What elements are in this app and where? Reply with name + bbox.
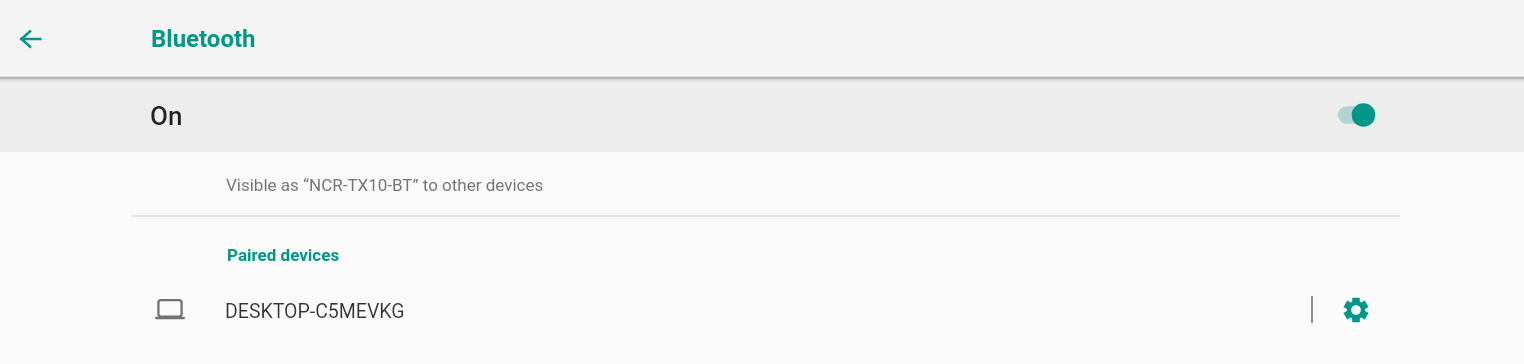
staticText: Bluetooth (151, 25, 256, 53)
button[interactable]: Device settings (1312, 279, 1400, 343)
button[interactable]: Bluetooth toggle (1326, 91, 1386, 139)
button[interactable]: Back (7, 15, 55, 63)
staticText: Paired devices (227, 245, 340, 265)
staticText: On (150, 101, 183, 131)
button[interactable]: DESKTOP-C5MEVKG (0, 279, 1524, 343)
staticText: DESKTOP-C5MEVKG (225, 300, 405, 323)
staticText: Visible as “NCR-TX10-BT” to other device… (226, 175, 544, 195)
button[interactable]: On (0, 78, 1524, 152)
